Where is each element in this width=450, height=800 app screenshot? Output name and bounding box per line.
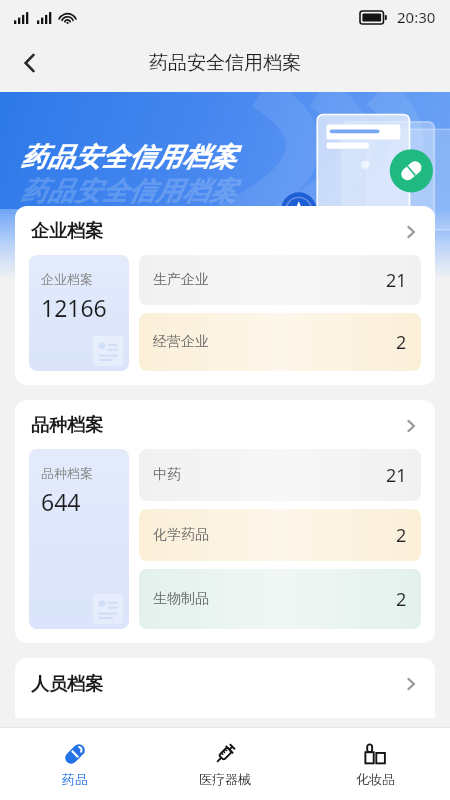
button[interactable]: 药品 xyxy=(0,728,150,800)
button[interactable]: 经营企业 xyxy=(139,313,421,371)
button[interactable]: 品种档案 xyxy=(29,449,129,629)
staticText: 21 xyxy=(386,268,407,293)
staticText: 2 xyxy=(396,523,407,548)
staticText: 人员档案 xyxy=(31,673,103,696)
staticText: 生物制品 xyxy=(153,590,209,608)
staticText: 企业档案 xyxy=(41,271,93,287)
staticText: 化妆品 xyxy=(356,771,395,787)
button[interactable]: 化学药品 xyxy=(139,509,421,561)
staticText: 药品安全信用档案 xyxy=(20,141,236,174)
staticText: 中药 xyxy=(153,466,181,484)
staticText: 2 xyxy=(396,330,407,355)
staticText: 品种档案 xyxy=(41,465,93,481)
staticText: 20:30 xyxy=(397,7,436,27)
staticText: 企业档案 xyxy=(31,220,103,243)
staticText: 经营企业 xyxy=(153,333,209,351)
button[interactable]: 品种档案 xyxy=(15,400,435,643)
staticText: 12166 xyxy=(41,292,107,323)
button[interactable]: 生产企业 xyxy=(139,255,421,305)
staticText: 生产企业 xyxy=(153,271,209,289)
staticText: 药品安全信用档案 xyxy=(149,51,301,75)
staticText: 药品 xyxy=(62,771,88,787)
button[interactable]: 企业档案 xyxy=(15,206,435,385)
button[interactable]: 生物制品 xyxy=(139,569,421,629)
button[interactable]: Back xyxy=(6,39,54,87)
staticText: 21 xyxy=(386,463,407,488)
staticText: 644 xyxy=(41,486,81,517)
button[interactable]: 人员档案 xyxy=(15,658,435,718)
staticText: 2 xyxy=(396,587,407,612)
staticText: 化学药品 xyxy=(153,526,209,544)
button[interactable]: 医疗器械 xyxy=(150,728,300,800)
staticText: 医疗器械 xyxy=(199,771,251,787)
button[interactable]: 化妆品 xyxy=(300,728,450,800)
button[interactable]: 企业档案 xyxy=(29,255,129,371)
staticText: 药品安全信用档案 xyxy=(20,175,236,208)
staticText: 品种档案 xyxy=(31,414,103,437)
button[interactable]: 中药 xyxy=(139,449,421,501)
